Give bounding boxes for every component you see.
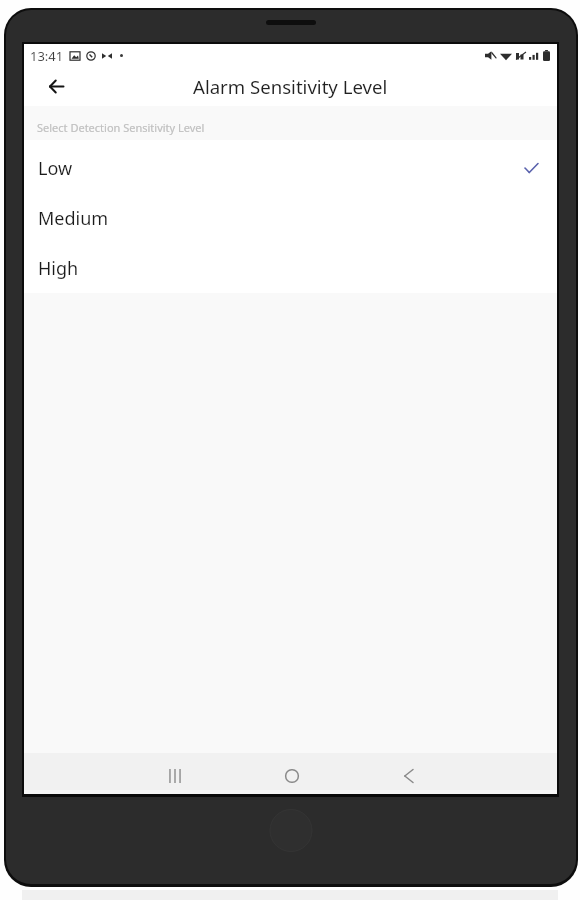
staticText: 13:41 xyxy=(30,47,64,65)
button[interactable]: Navigate up xyxy=(38,68,74,104)
button[interactable]: Back xyxy=(388,757,428,794)
button[interactable]: Low xyxy=(24,143,557,193)
staticText: High xyxy=(38,256,79,281)
staticText: Select Detection Sensitivity Level xyxy=(37,120,205,135)
button[interactable]: Home xyxy=(272,757,312,794)
staticText: Medium xyxy=(38,206,109,231)
staticText: Alarm Sensitivity Level xyxy=(193,74,388,99)
button[interactable]: Recent apps xyxy=(155,757,195,794)
button[interactable]: Medium xyxy=(24,193,557,243)
button[interactable]: High xyxy=(24,243,557,293)
staticText: Low xyxy=(38,156,73,181)
